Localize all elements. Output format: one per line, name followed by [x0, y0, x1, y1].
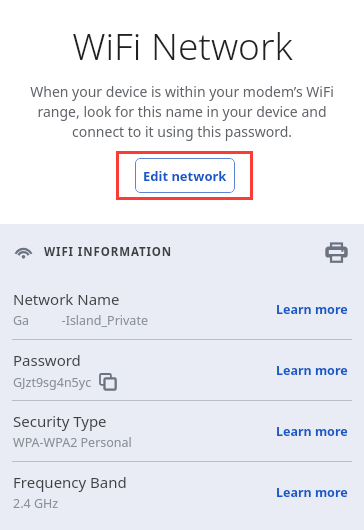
staticText: Learn more	[276, 484, 348, 501]
staticText: Password	[13, 350, 81, 370]
button[interactable]: Security Type	[0, 401, 364, 461]
staticText: Ga -Island_Private	[13, 312, 148, 329]
staticText: WiFi Network	[72, 20, 293, 70]
button[interactable]: Password	[0, 340, 364, 400]
button[interactable]: Edit network	[135, 158, 235, 193]
staticText: Security Type	[13, 411, 107, 431]
staticText: WIFI INFORMATION	[44, 244, 173, 260]
button[interactable]: Print WiFi information	[320, 236, 352, 268]
button[interactable]: Learn more	[274, 293, 350, 326]
staticText: Frequency Band	[13, 472, 127, 492]
staticText: Learn more	[276, 423, 348, 440]
button[interactable]: Frequency Band	[0, 462, 364, 522]
button[interactable]: Learn more	[274, 354, 350, 387]
staticText: When your device is within your modem’s …	[13, 82, 351, 141]
staticText: WPA-WPA2 Personal	[13, 434, 132, 451]
button[interactable]: Learn more	[274, 415, 350, 448]
staticText: Network Name	[13, 289, 120, 309]
staticText: Learn more	[276, 362, 348, 379]
button[interactable]: Learn more	[274, 476, 350, 509]
staticText: 2.4 GHz	[13, 495, 59, 512]
button[interactable]: Network Name	[0, 279, 364, 339]
staticText: GJzt9sg4n5yc	[13, 374, 92, 391]
staticText: Edit network	[143, 167, 227, 185]
staticText: Learn more	[276, 301, 348, 318]
button[interactable]: Copy password	[99, 373, 117, 391]
